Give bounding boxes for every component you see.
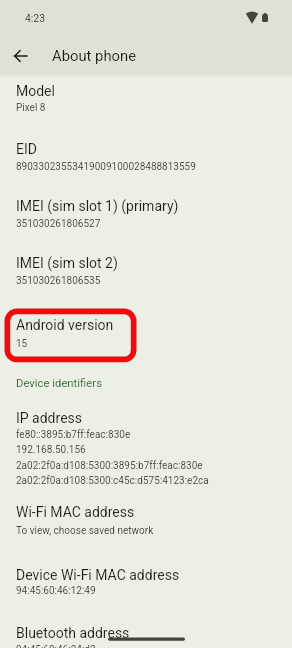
staticText: 94:45:60:46:12:49 [16,585,96,597]
staticText: fe80::3895:b7ff:feac:830e [16,429,131,441]
staticText: 15 [16,338,28,350]
button[interactable]: Back [6,42,34,70]
staticText: IP address [16,410,83,426]
staticText: 89033023553419009100028488813559 [16,161,196,173]
staticText: 94:45:60:46:24:d2 [16,644,96,648]
staticText: Wi-Fi MAC address [16,504,135,520]
staticText: EID [16,141,37,157]
staticText: IMEI (sim slot 2) [16,255,118,271]
staticText: IMEI (sim slot 1) (primary) [16,198,179,214]
staticText: Model [16,83,55,99]
staticText: To view, choose saved network [16,525,154,537]
staticText: 2a02:2f0a:d108:5300:3895:b7ff:feac:830e [16,460,203,472]
staticText: 2a02:2f0a:d108:5300:c45c:d575:4123:e2ca [16,475,209,487]
staticText: 351030261806535 [16,275,101,287]
staticText: 351030261806527 [16,218,101,230]
staticText: 4:23 [25,12,46,24]
staticText: About phone [52,47,136,64]
staticText: Pixel 8 [16,102,46,114]
staticText: Android version [16,317,114,333]
staticText: 192.168.50.156 [16,444,86,456]
staticText: Device identifiers [16,377,102,390]
staticText: Device Wi-Fi MAC address [16,567,180,583]
staticText: Bluetooth address [16,625,130,641]
